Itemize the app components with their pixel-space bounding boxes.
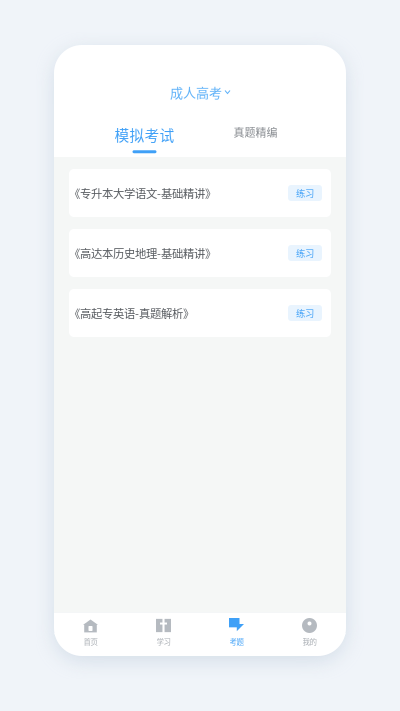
staticText: 《专升本大学语文-基础精讲》	[69, 185, 216, 201]
button[interactable]: 学习	[127, 612, 200, 656]
staticText: 首页	[83, 636, 97, 647]
staticText: 学习	[156, 636, 170, 647]
staticText: 《高起专英语-真题解析》	[69, 305, 194, 321]
button[interactable]: 模拟考试	[89, 100, 200, 157]
button[interactable]: 考题	[200, 612, 273, 656]
staticText: 模拟考试	[114, 124, 174, 145]
staticText: 真题精编	[233, 124, 277, 140]
button[interactable]: 首页	[54, 612, 127, 656]
button[interactable]: 真题精编	[200, 100, 311, 157]
staticText: 练习	[296, 186, 314, 200]
staticText: 考题	[229, 636, 243, 647]
button[interactable]: 《高达本历史地理-基础精讲》	[69, 229, 331, 277]
staticText: 《高达本历史地理-基础精讲》	[69, 245, 216, 261]
button[interactable]: 《专升本大学语文-基础精讲》	[69, 169, 331, 217]
button[interactable]: 《高起专英语-真题解析》	[69, 289, 331, 337]
staticText: 我的	[302, 636, 316, 647]
staticText: 练习	[296, 306, 314, 320]
staticText: 成人高考	[170, 82, 222, 101]
button[interactable]: 我的	[273, 612, 346, 656]
button[interactable]: 成人高考	[54, 84, 346, 100]
staticText: 练习	[296, 246, 314, 260]
